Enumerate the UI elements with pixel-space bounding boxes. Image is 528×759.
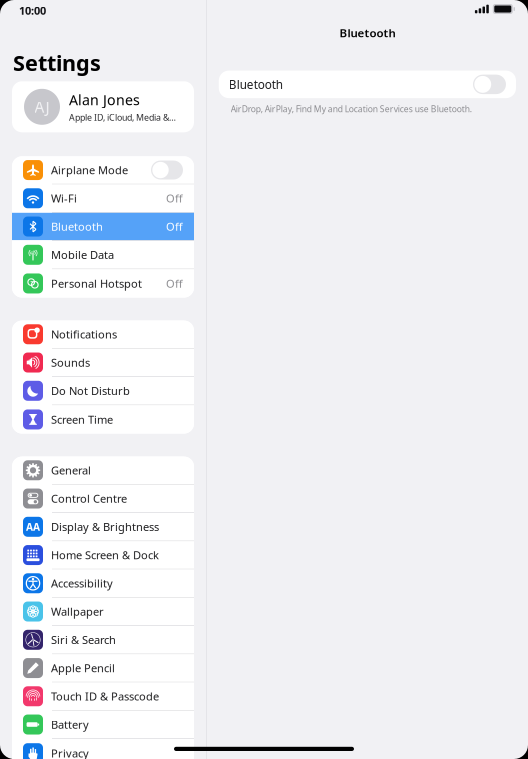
staticText: Privacy xyxy=(51,746,89,759)
button[interactable]: AA xyxy=(12,513,194,541)
staticText: Apple ID, iCloud, Media &… xyxy=(69,111,176,123)
staticText: Alan Jones xyxy=(69,90,140,109)
button[interactable]: Bluetooth xyxy=(219,71,516,98)
button[interactable]: Home Screen & Dock xyxy=(12,541,194,569)
staticText: Off xyxy=(166,191,183,206)
button[interactable]: Sounds xyxy=(12,349,194,377)
staticText: Wallpaper xyxy=(51,604,104,619)
staticText: Bluetooth xyxy=(339,25,395,41)
staticText: 10:00 xyxy=(19,3,46,18)
button[interactable]: AJ xyxy=(12,81,194,132)
staticText: Display & Brightness xyxy=(51,519,159,534)
button[interactable]: Privacy xyxy=(12,739,194,759)
staticText: Off xyxy=(166,219,183,234)
button[interactable]: Bluetooth xyxy=(12,213,194,241)
staticText: Off xyxy=(166,276,183,291)
staticText: Wi-Fi xyxy=(51,191,77,206)
button[interactable]: Personal Hotspot xyxy=(12,269,194,297)
staticText: Do Not Disturb xyxy=(51,383,130,398)
staticText: Sounds xyxy=(51,355,90,370)
staticText: Settings xyxy=(13,48,101,77)
staticText: Airplane Mode xyxy=(51,162,128,178)
staticText: Accessibility xyxy=(51,576,113,591)
staticText: Mobile Data xyxy=(51,247,114,262)
staticText: Apple Pencil xyxy=(51,660,115,676)
button[interactable]: Battery xyxy=(12,711,194,739)
button[interactable]: Siri & Search xyxy=(12,626,194,654)
button[interactable]: Mobile Data xyxy=(12,241,194,269)
staticText: Bluetooth xyxy=(51,219,103,234)
button[interactable]: Wi-Fi xyxy=(12,185,194,213)
staticText: Notifications xyxy=(51,327,117,342)
staticText: Touch ID & Passcode xyxy=(51,689,159,704)
button[interactable]: Screen Time xyxy=(12,405,194,433)
staticText: General xyxy=(51,463,91,478)
staticText: AirDrop, AirPlay, Find My and Location S… xyxy=(231,103,472,115)
staticText: Personal Hotspot xyxy=(51,276,142,291)
staticText: Home Screen & Dock xyxy=(51,547,159,563)
staticText: AJ xyxy=(34,96,49,117)
button[interactable]: Touch ID & Passcode xyxy=(12,683,194,711)
staticText: Battery xyxy=(51,717,89,732)
button[interactable]: Accessibility xyxy=(12,570,194,598)
button[interactable]: Apple Pencil xyxy=(12,654,194,682)
button[interactable]: Do Not Disturb xyxy=(12,377,194,405)
button[interactable]: General xyxy=(12,457,194,485)
button[interactable]: Wallpaper xyxy=(12,598,194,626)
button[interactable]: Control Centre xyxy=(12,485,194,513)
button[interactable]: Notifications xyxy=(12,321,194,349)
staticText: Screen Time xyxy=(51,412,113,427)
staticText: Bluetooth xyxy=(229,76,283,92)
staticText: AA xyxy=(26,520,40,534)
staticText: Control Centre xyxy=(51,491,127,506)
button[interactable]: Airplane Mode xyxy=(12,156,194,184)
staticText: Siri & Search xyxy=(51,632,116,647)
